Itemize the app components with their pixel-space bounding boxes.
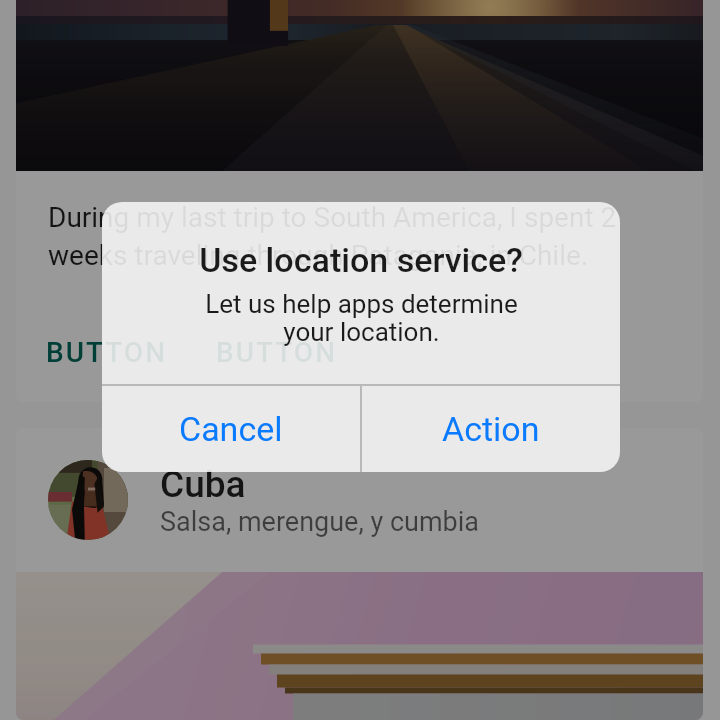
button[interactable]: BUTTON bbox=[30, 316, 184, 388]
button[interactable]: BUTTON bbox=[200, 316, 354, 388]
staticText: BUTTON bbox=[216, 336, 338, 369]
button[interactable]: Action bbox=[362, 386, 620, 472]
staticText: Use location service? bbox=[199, 240, 523, 280]
staticText: Cancel bbox=[179, 409, 283, 449]
staticText: Cuba bbox=[160, 463, 246, 506]
staticText: Action bbox=[442, 409, 540, 449]
staticText: During my last trip to South America, I … bbox=[48, 201, 648, 272]
button[interactable]: Cancel bbox=[102, 386, 360, 472]
staticText: Let us help apps determine your location… bbox=[205, 289, 518, 348]
staticText: Salsa, merengue, y cumbia bbox=[160, 506, 479, 538]
staticText: BUTTON bbox=[46, 336, 168, 369]
